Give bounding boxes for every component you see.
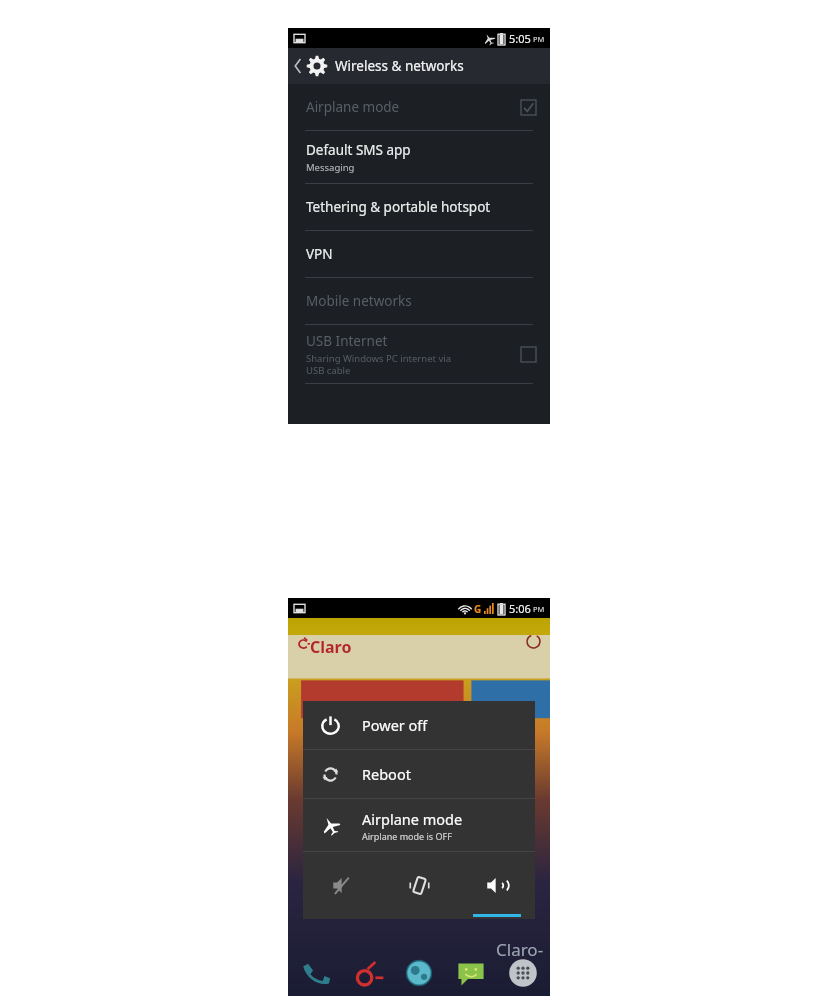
button[interactable]: Apps (504, 954, 542, 992)
staticText: Mobile networks (306, 292, 412, 310)
other: Back (294, 59, 302, 73)
button[interactable]: VPN (288, 231, 550, 277)
staticText: Tethering & portable hotspot (306, 198, 491, 216)
button[interactable]: Default SMS app (288, 131, 550, 183)
button[interactable]: Airplane mode (303, 799, 535, 851)
button[interactable]: USB Internet (288, 325, 550, 383)
staticText: Claro- (496, 938, 544, 961)
staticText: PM (533, 34, 545, 44)
button[interactable]: Claro (348, 954, 386, 992)
button[interactable]: Messaging (452, 954, 490, 992)
staticText: G (474, 602, 482, 616)
button[interactable]: Airplane mode (288, 84, 550, 130)
button[interactable]: Sound (458, 852, 535, 919)
staticText: 5:06 (509, 601, 531, 616)
staticText: Messaging (306, 161, 355, 174)
staticText: Airplane mode is OFF (362, 830, 452, 842)
staticText: Power off (362, 715, 428, 735)
staticText: Airplane mode (306, 98, 400, 116)
staticText: 5:05 (509, 31, 531, 46)
button[interactable]: Power off (303, 701, 535, 749)
button[interactable]: Vibrate (381, 852, 458, 919)
button[interactable]: Phone (296, 954, 334, 992)
button[interactable]: Silent (303, 852, 381, 919)
button[interactable]: Tethering & portable hotspot (288, 184, 550, 230)
staticText: Claro (310, 636, 352, 658)
staticText: PM (533, 604, 545, 614)
button[interactable]: Reboot (303, 750, 535, 798)
staticText: Sharing Windows PC internet via USB cabl… (306, 352, 452, 377)
button[interactable]: Back (288, 48, 550, 84)
staticText: Reboot (362, 764, 411, 784)
staticText: USB Internet (306, 332, 388, 350)
button[interactable]: Browser (400, 954, 438, 992)
staticText: Airplane mode (362, 809, 463, 829)
button[interactable]: Mobile networks (288, 278, 550, 324)
staticText: Default SMS app (306, 141, 411, 159)
staticText: VPN (306, 245, 333, 263)
staticText: Wireless & networks (335, 57, 464, 75)
